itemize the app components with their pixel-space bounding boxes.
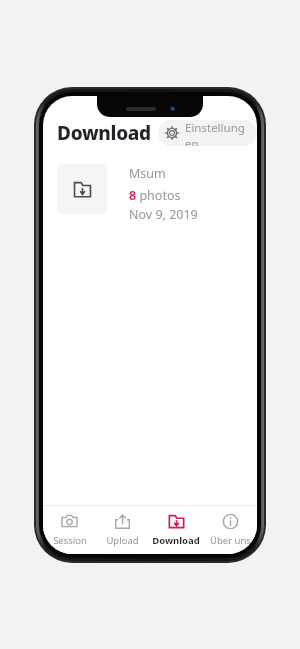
other: Session	[61, 513, 78, 530]
button[interactable]: Über uns	[203, 506, 257, 554]
staticText: Nov 9, 2019	[129, 206, 198, 223]
staticText: Über uns	[210, 534, 251, 547]
other: Über uns	[222, 513, 239, 530]
button[interactable]: Session	[43, 506, 96, 554]
staticText: 8 photos	[129, 187, 181, 204]
button[interactable]: Einstellungen	[158, 120, 257, 146]
button[interactable]: Download	[149, 506, 203, 554]
other: Download	[168, 513, 185, 530]
staticText: Msum	[129, 165, 166, 182]
staticText: Download	[57, 120, 151, 146]
other: Upload	[114, 513, 131, 530]
staticText: Session	[53, 534, 87, 547]
staticText: Upload	[106, 534, 139, 547]
button[interactable]: Upload	[96, 506, 149, 554]
button[interactable]: Msum	[43, 160, 257, 227]
staticText: Einstellungen	[185, 120, 247, 146]
staticText: Download	[152, 534, 200, 547]
